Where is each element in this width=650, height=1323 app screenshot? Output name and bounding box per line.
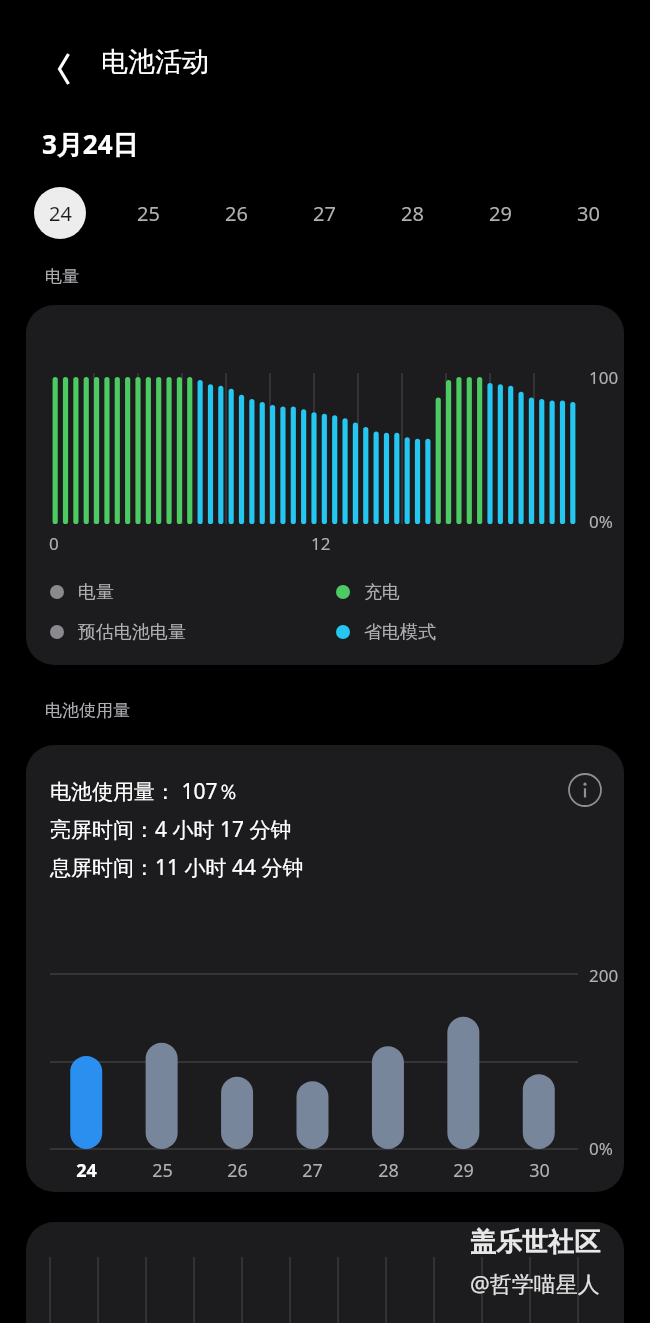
- staticText: 28: [378, 1158, 399, 1183]
- staticText: 电池使用量: [45, 700, 130, 721]
- staticText: 0%: [589, 1137, 613, 1160]
- staticText: 25: [137, 200, 160, 227]
- button[interactable]: 电量: [50, 577, 114, 607]
- staticText: 27: [313, 200, 336, 227]
- button[interactable]: 预估电池电量: [50, 617, 186, 647]
- button[interactable]: 26: [210, 187, 262, 239]
- staticText: 30: [577, 200, 600, 227]
- staticText: 充电: [364, 581, 400, 604]
- staticText: 0: [49, 532, 59, 555]
- staticText: @哲学喵星人: [470, 1268, 600, 1298]
- staticText: 12: [311, 532, 331, 555]
- staticText: 24: [49, 200, 72, 227]
- staticText: 省电模式: [364, 621, 436, 644]
- staticText: 电量: [45, 266, 79, 287]
- staticText: 盖乐世社区: [470, 1226, 600, 1259]
- staticText: 3月24日: [42, 126, 139, 162]
- staticText: 电池使用量： 107％: [50, 777, 239, 806]
- button[interactable]: 充电: [336, 577, 400, 607]
- button[interactable]: Back: [40, 45, 88, 93]
- staticText: 电池活动: [101, 45, 209, 79]
- staticText: 电量: [78, 581, 114, 604]
- button[interactable]: 28: [386, 187, 438, 239]
- staticText: 29: [489, 200, 512, 227]
- button[interactable]: 100: [26, 305, 624, 665]
- button[interactable]: 24: [34, 187, 86, 239]
- staticText: 27: [302, 1158, 323, 1183]
- staticText: 26: [227, 1158, 248, 1183]
- button[interactable]: 25: [122, 187, 174, 239]
- staticText: 亮屏时间：4 小时 17 分钟: [50, 815, 292, 844]
- staticText: 100: [589, 366, 619, 389]
- staticText: 29: [453, 1158, 474, 1183]
- staticText: 28: [401, 200, 424, 227]
- staticText: 预估电池电量: [78, 621, 186, 644]
- staticText: 30: [529, 1158, 550, 1183]
- staticText: 息屏时间：11 小时 44 分钟: [50, 853, 304, 882]
- button[interactable]: [26, 1222, 624, 1323]
- button[interactable]: 27: [298, 187, 350, 239]
- button[interactable]: 省电模式: [336, 617, 436, 647]
- staticText: 0%: [589, 510, 613, 533]
- staticText: 26: [225, 200, 248, 227]
- staticText: 25: [152, 1158, 173, 1183]
- staticText: 24: [76, 1158, 97, 1183]
- staticText: 200: [589, 964, 619, 987]
- button[interactable]: 30: [562, 187, 614, 239]
- button[interactable]: 29: [474, 187, 526, 239]
- button[interactable]: Info: [562, 767, 608, 813]
- button[interactable]: 电池使用量： 107％: [26, 745, 624, 1192]
